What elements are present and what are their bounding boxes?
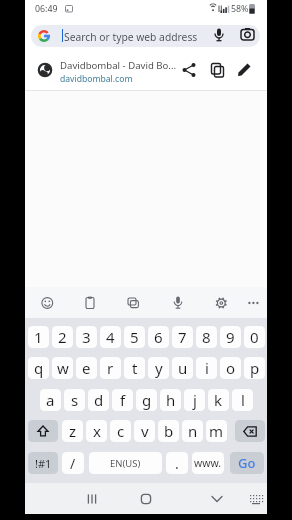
staticText: m bbox=[209, 421, 224, 441]
staticText: s bbox=[71, 390, 79, 410]
staticText: 3 bbox=[82, 327, 91, 347]
staticText: Search or type web address bbox=[64, 30, 198, 44]
staticText: !#1 bbox=[35, 456, 52, 471]
staticText: w bbox=[57, 358, 69, 378]
staticText: c bbox=[117, 421, 125, 441]
staticText: j bbox=[193, 390, 197, 410]
staticText: n bbox=[188, 421, 198, 441]
staticText: u bbox=[178, 358, 188, 378]
staticText: t bbox=[132, 358, 138, 378]
staticText: a bbox=[46, 390, 55, 410]
staticText: 1 bbox=[34, 327, 43, 347]
staticText: p bbox=[250, 358, 260, 378]
staticText: d bbox=[94, 390, 104, 410]
staticText: e bbox=[82, 358, 91, 378]
staticText: z bbox=[69, 421, 77, 441]
staticText: y bbox=[155, 358, 163, 378]
staticText: / bbox=[70, 454, 76, 473]
staticText: r bbox=[107, 358, 114, 378]
staticText: 4 bbox=[106, 327, 115, 347]
staticText: davidbombal.com bbox=[60, 73, 133, 85]
staticText: i bbox=[205, 358, 209, 378]
staticText: v bbox=[141, 421, 149, 441]
staticText: f bbox=[120, 390, 126, 410]
staticText: o bbox=[226, 358, 236, 378]
staticText: EN(US) bbox=[110, 457, 141, 470]
staticText: h bbox=[166, 390, 176, 410]
staticText: q bbox=[34, 358, 44, 378]
staticText: 06:49 bbox=[35, 3, 58, 15]
staticText: Go bbox=[238, 454, 256, 472]
staticText: Davidbombal - David Bo... bbox=[60, 59, 177, 72]
staticText: 8 bbox=[202, 327, 211, 347]
staticText: g bbox=[142, 390, 152, 410]
staticText: x bbox=[93, 421, 101, 441]
staticText: . bbox=[175, 454, 179, 473]
staticText: 9 bbox=[226, 327, 235, 347]
staticText: 7 bbox=[178, 327, 187, 347]
staticText: l bbox=[241, 390, 245, 410]
staticText: 5 bbox=[130, 327, 139, 347]
staticText: www. bbox=[194, 456, 222, 470]
staticText: 6 bbox=[154, 327, 163, 347]
staticText: 58% bbox=[231, 3, 249, 15]
staticText: k bbox=[214, 390, 223, 410]
staticText: 0 bbox=[250, 327, 259, 347]
staticText: b bbox=[164, 421, 174, 441]
staticText: 2 bbox=[58, 327, 67, 347]
